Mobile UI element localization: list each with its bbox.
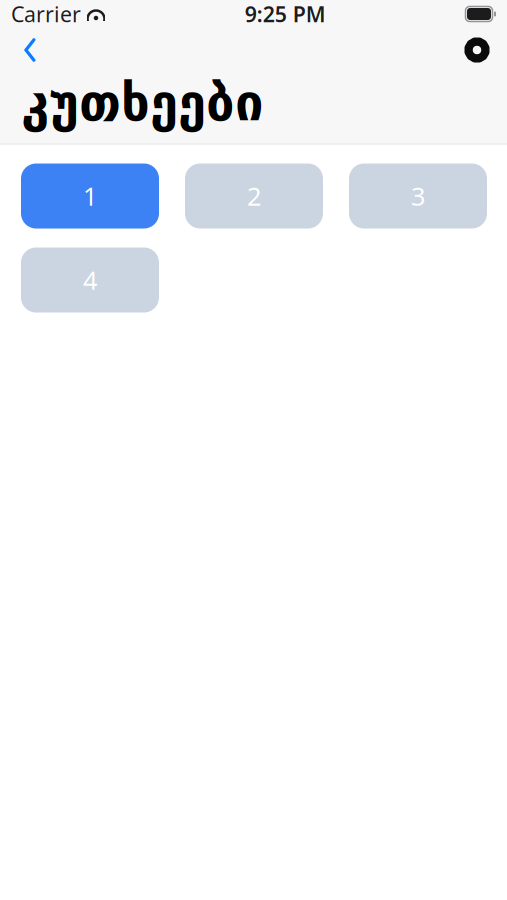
button[interactable]: 2 <box>185 163 323 228</box>
staticText: 9:25 PM <box>245 0 326 28</box>
button[interactable]: 1 <box>21 163 159 228</box>
button[interactable]: 3 <box>349 163 487 228</box>
staticText: 2 <box>247 179 261 213</box>
button[interactable]: Settings <box>454 28 500 72</box>
staticText: Carrier <box>11 0 81 28</box>
button[interactable]: Back <box>7 28 53 72</box>
button[interactable]: 4 <box>21 247 159 312</box>
staticText: 4 <box>83 263 97 297</box>
staticText: 3 <box>411 179 425 213</box>
staticText: კუთხეები <box>21 74 264 131</box>
staticText: 1 <box>83 179 97 213</box>
